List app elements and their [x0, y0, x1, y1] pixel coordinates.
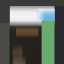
button[interactable]: Photo: [0, 0, 64, 64]
